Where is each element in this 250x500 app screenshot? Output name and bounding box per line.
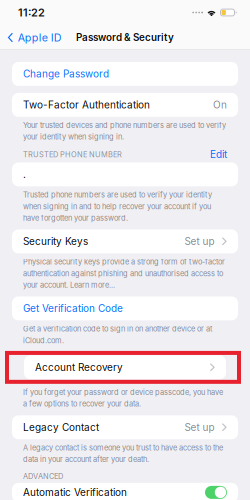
staticText: Trusted phone numbers are used to verify… [23,190,212,222]
staticText: Edit [210,148,227,160]
button[interactable]: Get Verification Code [12,296,238,320]
staticText: Your trusted devices and phone numbers a… [23,121,226,141]
staticText: Set up [185,421,215,433]
staticText: If you forget your password or device pa… [23,388,223,408]
staticText: Security Keys [23,235,88,247]
staticText: Get a verification code to sign in on an… [23,324,212,345]
staticText: Apple ID [18,31,62,44]
staticText: A legacy contact is someone you trust to… [23,443,223,464]
button[interactable]: Two-Factor Authentication [12,93,238,117]
staticText: ADVANCED [23,472,63,481]
staticText: On [213,99,227,111]
staticText: Two-Factor Authentication [23,99,150,111]
staticText: Set up [185,235,215,247]
staticText: Legacy Contact [23,421,99,433]
staticText: Password & Security [76,31,174,43]
button[interactable]: Legacy Contact [12,415,238,439]
staticText: Automatic Verification [23,486,127,498]
staticText: Change Password [23,68,109,80]
button[interactable]: Account Recovery [24,355,226,379]
staticText: Physical security keys provide a strong … [23,257,225,289]
staticText: 11:22 [18,6,45,19]
button[interactable]: Change Password [12,62,238,86]
staticText: Get Verification Code [23,302,123,314]
staticText: Account Recovery [35,361,123,373]
button[interactable]: Apple ID [0,27,62,48]
staticText: . [23,168,26,180]
staticText: TRUSTED PHONE NUMBER [23,150,122,159]
button[interactable]: Edit [210,148,227,160]
button[interactable]: Security Keys [12,229,238,253]
